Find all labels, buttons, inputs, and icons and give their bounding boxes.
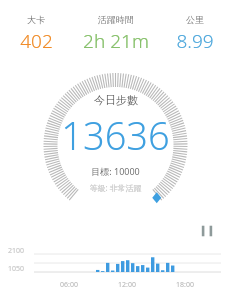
- button[interactable]: 今日步數: [0, 68, 231, 218]
- staticText: 今日步數: [94, 93, 138, 107]
- staticText: 2h 21m: [83, 28, 149, 54]
- button[interactable]: Pause: [197, 222, 217, 240]
- button[interactable]: 大卡: [0, 14, 72, 54]
- button[interactable]: 活躍時間: [72, 14, 159, 54]
- staticText: 目標: 10000: [91, 165, 140, 177]
- staticText: 等級: 非常活躍: [89, 182, 142, 193]
- staticText: 18:00: [176, 280, 194, 290]
- button[interactable]: 公里: [159, 14, 231, 54]
- staticText: 活躍時間: [98, 14, 134, 25]
- staticText: 06:00: [60, 280, 78, 290]
- staticText: 402: [20, 28, 53, 54]
- staticText: 12:00: [118, 280, 136, 290]
- staticText: 大卡: [27, 14, 45, 25]
- staticText: 8.99: [176, 28, 214, 54]
- staticText: 1050: [8, 264, 25, 274]
- staticText: 公里: [186, 14, 204, 25]
- staticText: 2100: [8, 246, 25, 256]
- staticText: 13636: [61, 109, 170, 161]
- button[interactable]: 2100: [0, 240, 231, 296]
